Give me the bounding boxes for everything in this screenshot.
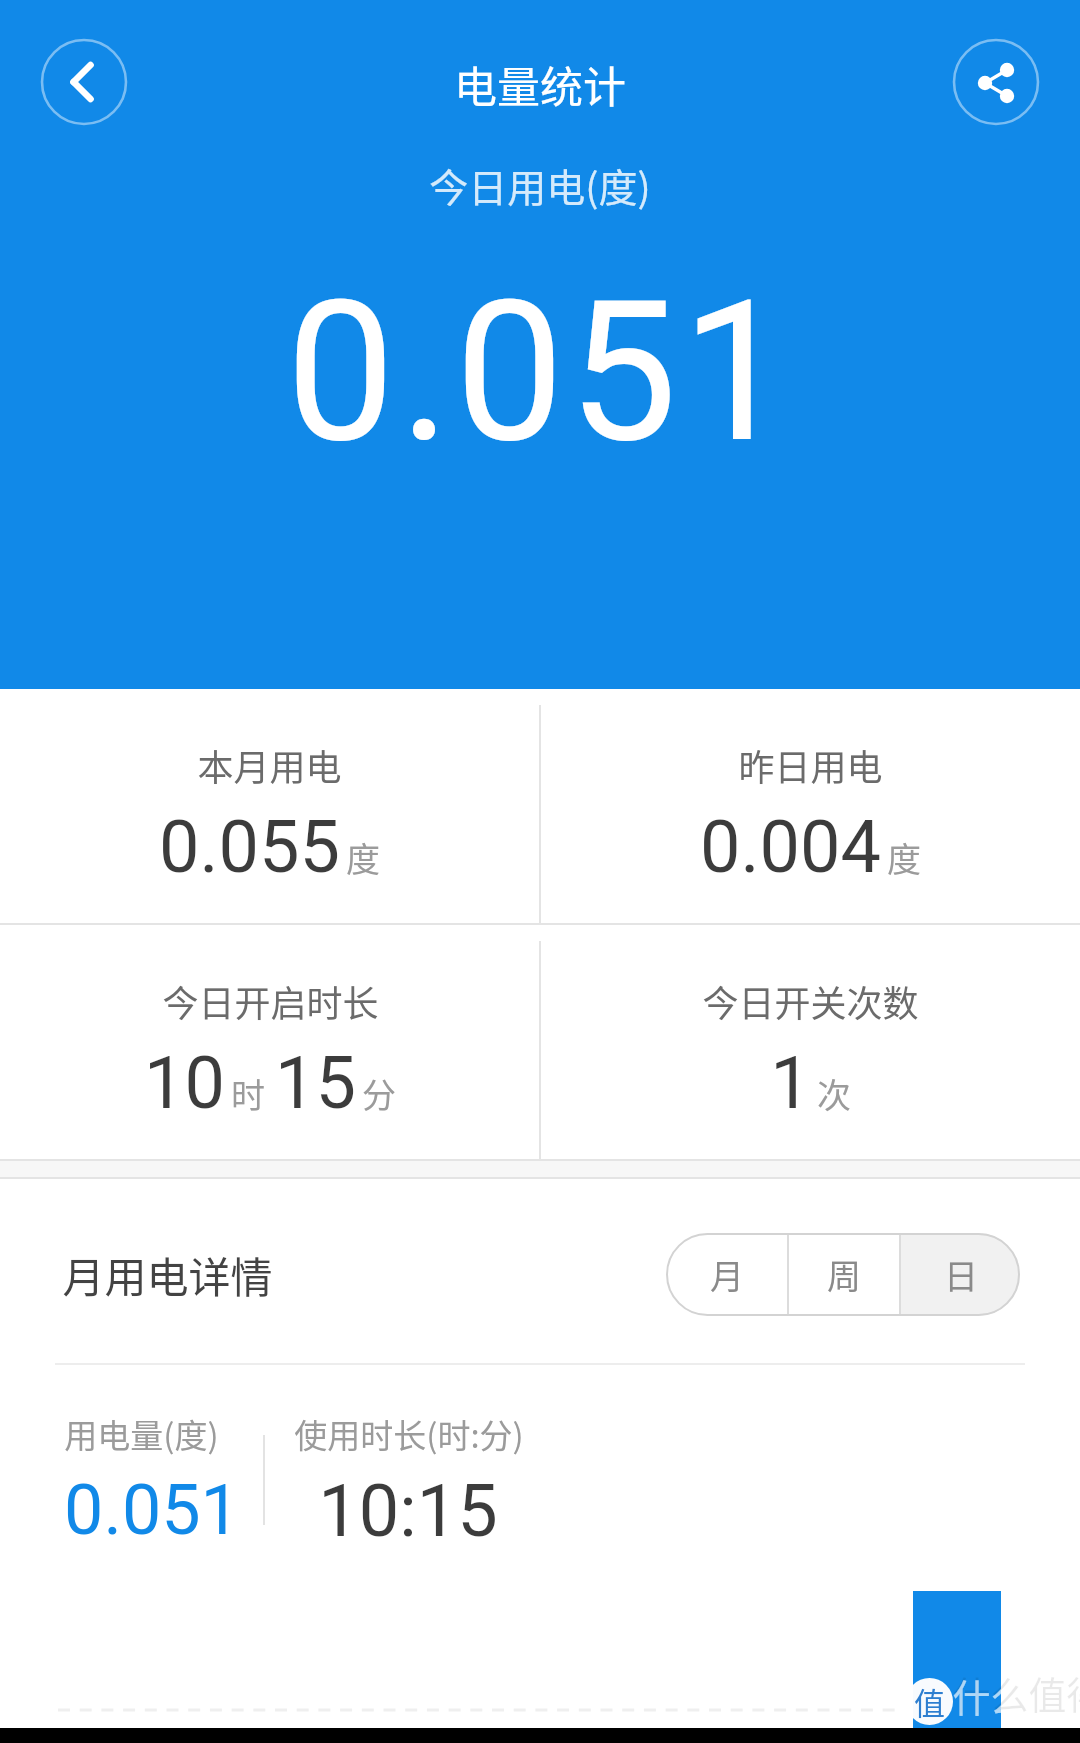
staticText: 本月用电 xyxy=(197,739,342,791)
staticText: 什么值得买 xyxy=(952,1665,1080,1720)
staticText: 分 xyxy=(362,1069,396,1118)
staticText: 度 xyxy=(346,833,380,882)
staticText: 1 xyxy=(770,1041,811,1125)
button[interactable]: Share xyxy=(952,38,1040,126)
staticText: 0.004 xyxy=(700,805,881,889)
staticText: 度 xyxy=(887,833,921,882)
staticText: 月 xyxy=(710,1250,744,1299)
staticText: 周 xyxy=(827,1250,861,1299)
button[interactable]: 周 xyxy=(789,1233,899,1316)
staticText: 今日用电(度) xyxy=(429,157,651,213)
staticText: 10:15 xyxy=(318,1469,498,1540)
staticText: 次 xyxy=(817,1069,851,1118)
staticText: 今日开关次数 xyxy=(702,975,919,1027)
staticText: 电量统计 xyxy=(454,53,626,115)
staticText: 15 xyxy=(275,1041,356,1125)
staticText: 0.051 xyxy=(64,1469,240,1540)
staticText: 10 xyxy=(144,1041,225,1125)
button[interactable]: 月 xyxy=(666,1233,787,1316)
button[interactable]: 日 xyxy=(901,1233,1020,1316)
staticText: 0.051 xyxy=(286,259,795,486)
staticText: 今日开启时长 xyxy=(162,975,379,1027)
staticText: 时 xyxy=(231,1069,265,1118)
staticText: 昨日用电 xyxy=(738,739,883,791)
staticText: 什么值得买 xyxy=(952,1668,1001,1720)
staticText: 0.055 xyxy=(159,805,340,889)
staticText: 值 xyxy=(914,1679,945,1724)
staticText: 用电量(度) xyxy=(64,1410,219,1458)
staticText: 使用时长(时:分) xyxy=(294,1410,524,1458)
staticText: 月用电详情 xyxy=(62,1244,273,1305)
button[interactable]: Back xyxy=(40,38,128,126)
staticText: 日 xyxy=(944,1250,978,1299)
